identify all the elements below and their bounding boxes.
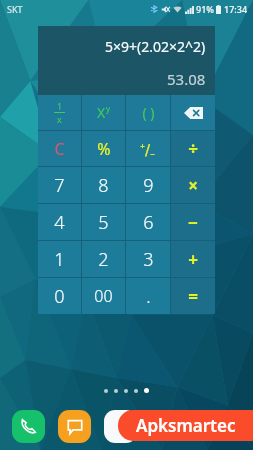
staticText: 5 xyxy=(98,210,109,235)
button[interactable]: 4 xyxy=(38,204,81,240)
button[interactable]: = xyxy=(171,278,215,314)
staticText: + xyxy=(188,248,198,271)
staticText: ⁺∕₋ xyxy=(140,139,156,159)
staticText: x xyxy=(57,113,62,125)
staticText: 91% xyxy=(196,3,214,15)
staticText: X xyxy=(97,103,106,122)
button[interactable]: 3 xyxy=(126,241,170,277)
staticText: 5×9+(2.02×2^2) xyxy=(105,37,206,56)
staticText: 0 xyxy=(54,284,65,309)
button[interactable]: x to the power y xyxy=(82,95,125,130)
button[interactable]: ÷ xyxy=(171,131,215,166)
button[interactable]: One over x xyxy=(38,95,81,130)
staticText: 8 xyxy=(98,173,109,198)
button[interactable]: 9 xyxy=(126,167,170,203)
staticText: 17:34 xyxy=(224,3,248,15)
button[interactable]: 0 xyxy=(38,278,81,314)
button[interactable]: Plus minus xyxy=(126,131,170,166)
staticText: − xyxy=(188,211,198,234)
staticText: 3 xyxy=(143,247,154,272)
button[interactable]: C xyxy=(38,131,81,166)
button[interactable]: Messages xyxy=(58,410,91,443)
button[interactable]: − xyxy=(171,204,215,240)
staticText: = xyxy=(188,285,198,308)
button[interactable]: + xyxy=(171,241,215,277)
button[interactable]: 8 xyxy=(82,167,125,203)
staticText: × xyxy=(188,174,198,197)
staticText: 00 xyxy=(94,285,113,307)
staticText: C xyxy=(54,138,65,160)
staticText: 6 xyxy=(143,210,154,235)
button[interactable]: × xyxy=(171,167,215,203)
staticText: 53.08 xyxy=(167,69,206,89)
staticText: SKT xyxy=(7,3,23,15)
staticText: y xyxy=(106,103,111,114)
staticText: Apksmartec xyxy=(136,414,236,437)
staticText: ( ) xyxy=(142,103,155,122)
button[interactable]: 1 xyxy=(38,241,81,277)
button[interactable]: 7 xyxy=(38,167,81,203)
staticText: . xyxy=(146,284,151,309)
button[interactable]: Internet xyxy=(104,410,137,443)
button[interactable]: 5 xyxy=(82,204,125,240)
staticText: 2 xyxy=(98,247,109,272)
staticText: 4 xyxy=(54,210,65,235)
staticText: 1 xyxy=(54,247,65,272)
staticText: ÷ xyxy=(188,137,198,160)
button[interactable]: ( ) xyxy=(126,95,170,130)
button[interactable]: Backspace xyxy=(171,95,215,130)
button[interactable]: 00 xyxy=(82,278,125,314)
button[interactable]: % xyxy=(82,131,125,166)
button[interactable]: 6 xyxy=(126,204,170,240)
staticText: % xyxy=(97,138,111,160)
staticText: 7 xyxy=(54,173,65,198)
button[interactable]: . xyxy=(126,278,170,314)
button[interactable]: Phone xyxy=(12,410,45,443)
staticText: 9 xyxy=(143,173,154,198)
button[interactable]: 2 xyxy=(82,241,125,277)
staticText: 1 xyxy=(57,100,63,112)
